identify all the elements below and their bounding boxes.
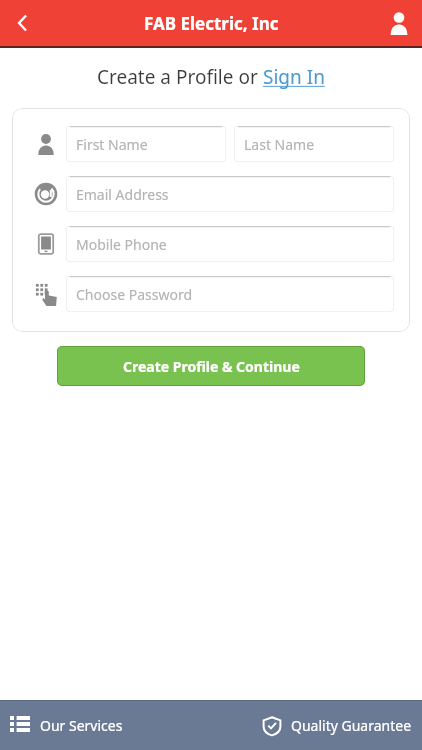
staticText: FAB Electric, Inc bbox=[144, 12, 279, 35]
button[interactable]: Sign In bbox=[263, 64, 325, 90]
button[interactable]: Our Services bbox=[0, 701, 211, 750]
other: Email bbox=[34, 182, 58, 206]
staticText: Choose Password bbox=[76, 285, 193, 304]
button[interactable]: Email Address bbox=[66, 176, 394, 212]
button[interactable]: First Name bbox=[66, 126, 226, 162]
staticText: Mobile Phone bbox=[76, 235, 167, 254]
other: Name bbox=[34, 132, 58, 156]
staticText: First Name bbox=[76, 135, 148, 154]
staticText: Email Address bbox=[76, 185, 169, 204]
button[interactable]: Back bbox=[0, 0, 46, 46]
button[interactable]: Last Name bbox=[234, 126, 394, 162]
button[interactable]: Mobile Phone bbox=[66, 226, 394, 262]
staticText: Create a Profile or bbox=[97, 64, 263, 90]
staticText: Last Name bbox=[244, 135, 315, 154]
other: Phone bbox=[34, 232, 58, 256]
staticText: Quality Guarantee bbox=[291, 716, 412, 735]
button[interactable]: Choose Password bbox=[66, 276, 394, 312]
other: Password bbox=[34, 282, 58, 306]
staticText: Create Profile & Continue bbox=[123, 357, 300, 376]
staticText: Sign In bbox=[263, 64, 325, 90]
button[interactable]: Account bbox=[376, 0, 422, 46]
staticText: Our Services bbox=[40, 716, 123, 735]
button[interactable]: Create Profile & Continue bbox=[57, 346, 365, 386]
button[interactable]: Quality Guarantee bbox=[211, 701, 422, 750]
